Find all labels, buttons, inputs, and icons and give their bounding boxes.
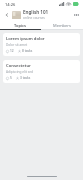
staticText: Adipiscing elit sed	[6, 70, 33, 74]
staticText: English 101	[23, 9, 49, 15]
button[interactable]: Consectetur	[3, 60, 80, 83]
staticText: 5	[10, 76, 12, 80]
button[interactable]: Topics	[0, 21, 41, 29]
staticText: Topics	[14, 23, 27, 28]
staticText: 14:26	[5, 2, 16, 7]
button[interactable]: English 101	[23, 9, 72, 20]
staticText: 3 tasks	[20, 76, 31, 80]
button[interactable]: Members	[41, 21, 83, 29]
button[interactable]: More options	[72, 10, 81, 19]
staticText: 8 tasks	[22, 49, 33, 53]
staticText: Lorem ipsum dolor	[6, 36, 45, 42]
staticText: Dolor sit amet	[6, 43, 28, 47]
staticText: Members	[53, 23, 71, 28]
staticText: 12	[10, 49, 14, 53]
staticText: online courses	[23, 16, 45, 20]
button[interactable]: Back	[2, 10, 11, 19]
staticText: Consectetur	[6, 63, 31, 69]
button[interactable]: Lorem ipsum dolor	[3, 33, 80, 56]
